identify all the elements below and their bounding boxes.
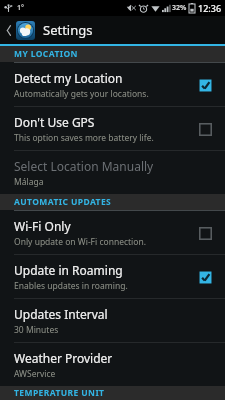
button[interactable]: Select Location Manually bbox=[0, 151, 225, 194]
button[interactable]: Back bbox=[0, 16, 225, 44]
staticText: Enables updates in roaming. bbox=[14, 280, 128, 292]
staticText: Málaga bbox=[14, 176, 44, 188]
button[interactable]: Weather Provider bbox=[0, 343, 225, 386]
staticText: 12:36 bbox=[198, 2, 222, 14]
staticText: Weather Provider bbox=[14, 350, 113, 366]
staticText: Updates Interval bbox=[14, 306, 108, 322]
button[interactable]: Detect my Location bbox=[0, 63, 225, 106]
button[interactable]: Update in Roaming bbox=[0, 255, 225, 298]
staticText: Select Location Manually bbox=[14, 158, 154, 174]
staticText: This option saves more battery life. bbox=[14, 132, 154, 144]
staticText: Automatically gets your locations. bbox=[14, 88, 149, 100]
other: Back bbox=[4, 20, 14, 40]
button[interactable]: Wi-Fi Only bbox=[0, 211, 225, 254]
button[interactable]: Don't Use GPS bbox=[0, 107, 225, 150]
staticText: 1° bbox=[17, 3, 24, 13]
staticText: Detect my Location bbox=[14, 70, 123, 86]
staticText: Update in Roaming bbox=[14, 262, 123, 278]
staticText: 32% bbox=[172, 3, 187, 13]
staticText: 30 Minutes bbox=[14, 324, 59, 336]
staticText: Only update on Wi-Fi connection. bbox=[14, 236, 146, 248]
staticText: TEMPERATURE UNIT bbox=[14, 387, 105, 399]
staticText: Wi-Fi Only bbox=[14, 218, 71, 234]
staticText: AUTOMATIC UPDATES bbox=[14, 196, 112, 208]
staticText: MY LOCATION bbox=[14, 48, 78, 60]
staticText: Don't Use GPS bbox=[14, 114, 95, 130]
staticText: Settings bbox=[43, 21, 93, 39]
staticText: AWService bbox=[14, 368, 56, 380]
button[interactable]: Updates Interval bbox=[0, 299, 225, 342]
